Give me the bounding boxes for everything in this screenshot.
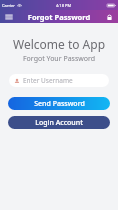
staticText: Send Password	[34, 99, 85, 109]
staticText: Carrier	[2, 3, 16, 8]
staticText: Forgot Your Password	[0, 54, 118, 64]
staticText: Welcome to App	[0, 36, 118, 52]
button[interactable]: Login Account	[8, 116, 110, 129]
staticText: Login Account	[35, 118, 83, 128]
staticText: Enter Username	[23, 76, 73, 85]
staticText: 4:18 PM	[56, 3, 72, 8]
button[interactable]: Open navigation menu	[3, 11, 15, 23]
staticText: Forgot Password	[0, 12, 118, 22]
button[interactable]: Security lock	[103, 11, 115, 23]
button[interactable]: Enter Username	[9, 74, 109, 87]
button[interactable]: Send Password	[8, 97, 110, 110]
